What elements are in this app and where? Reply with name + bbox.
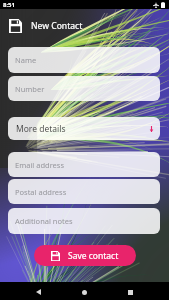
- button[interactable]: Email address: [8, 152, 160, 177]
- button[interactable]: Back: [29, 283, 47, 300]
- button[interactable]: Recents: [121, 283, 139, 300]
- staticText: New Contact: [31, 20, 83, 32]
- staticText: Name: [15, 55, 37, 65]
- staticText: Number: [15, 84, 45, 94]
- button[interactable]: Number: [8, 76, 160, 101]
- button[interactable]: Save contact: [34, 245, 136, 266]
- staticText: More details: [16, 123, 66, 135]
- staticText: Save contact: [68, 250, 119, 262]
- button[interactable]: Additional notes: [8, 208, 160, 234]
- staticText: Postal address: [15, 187, 67, 197]
- button[interactable]: Postal address: [8, 179, 160, 204]
- button[interactable]: Home: [75, 283, 93, 300]
- staticText: Email address: [15, 160, 65, 170]
- button[interactable]: Save: [9, 19, 22, 33]
- staticText: 8:51: [3, 1, 15, 9]
- button[interactable]: Name: [8, 47, 160, 73]
- staticText: Additional notes: [15, 216, 73, 226]
- button[interactable]: More details: [8, 117, 160, 140]
